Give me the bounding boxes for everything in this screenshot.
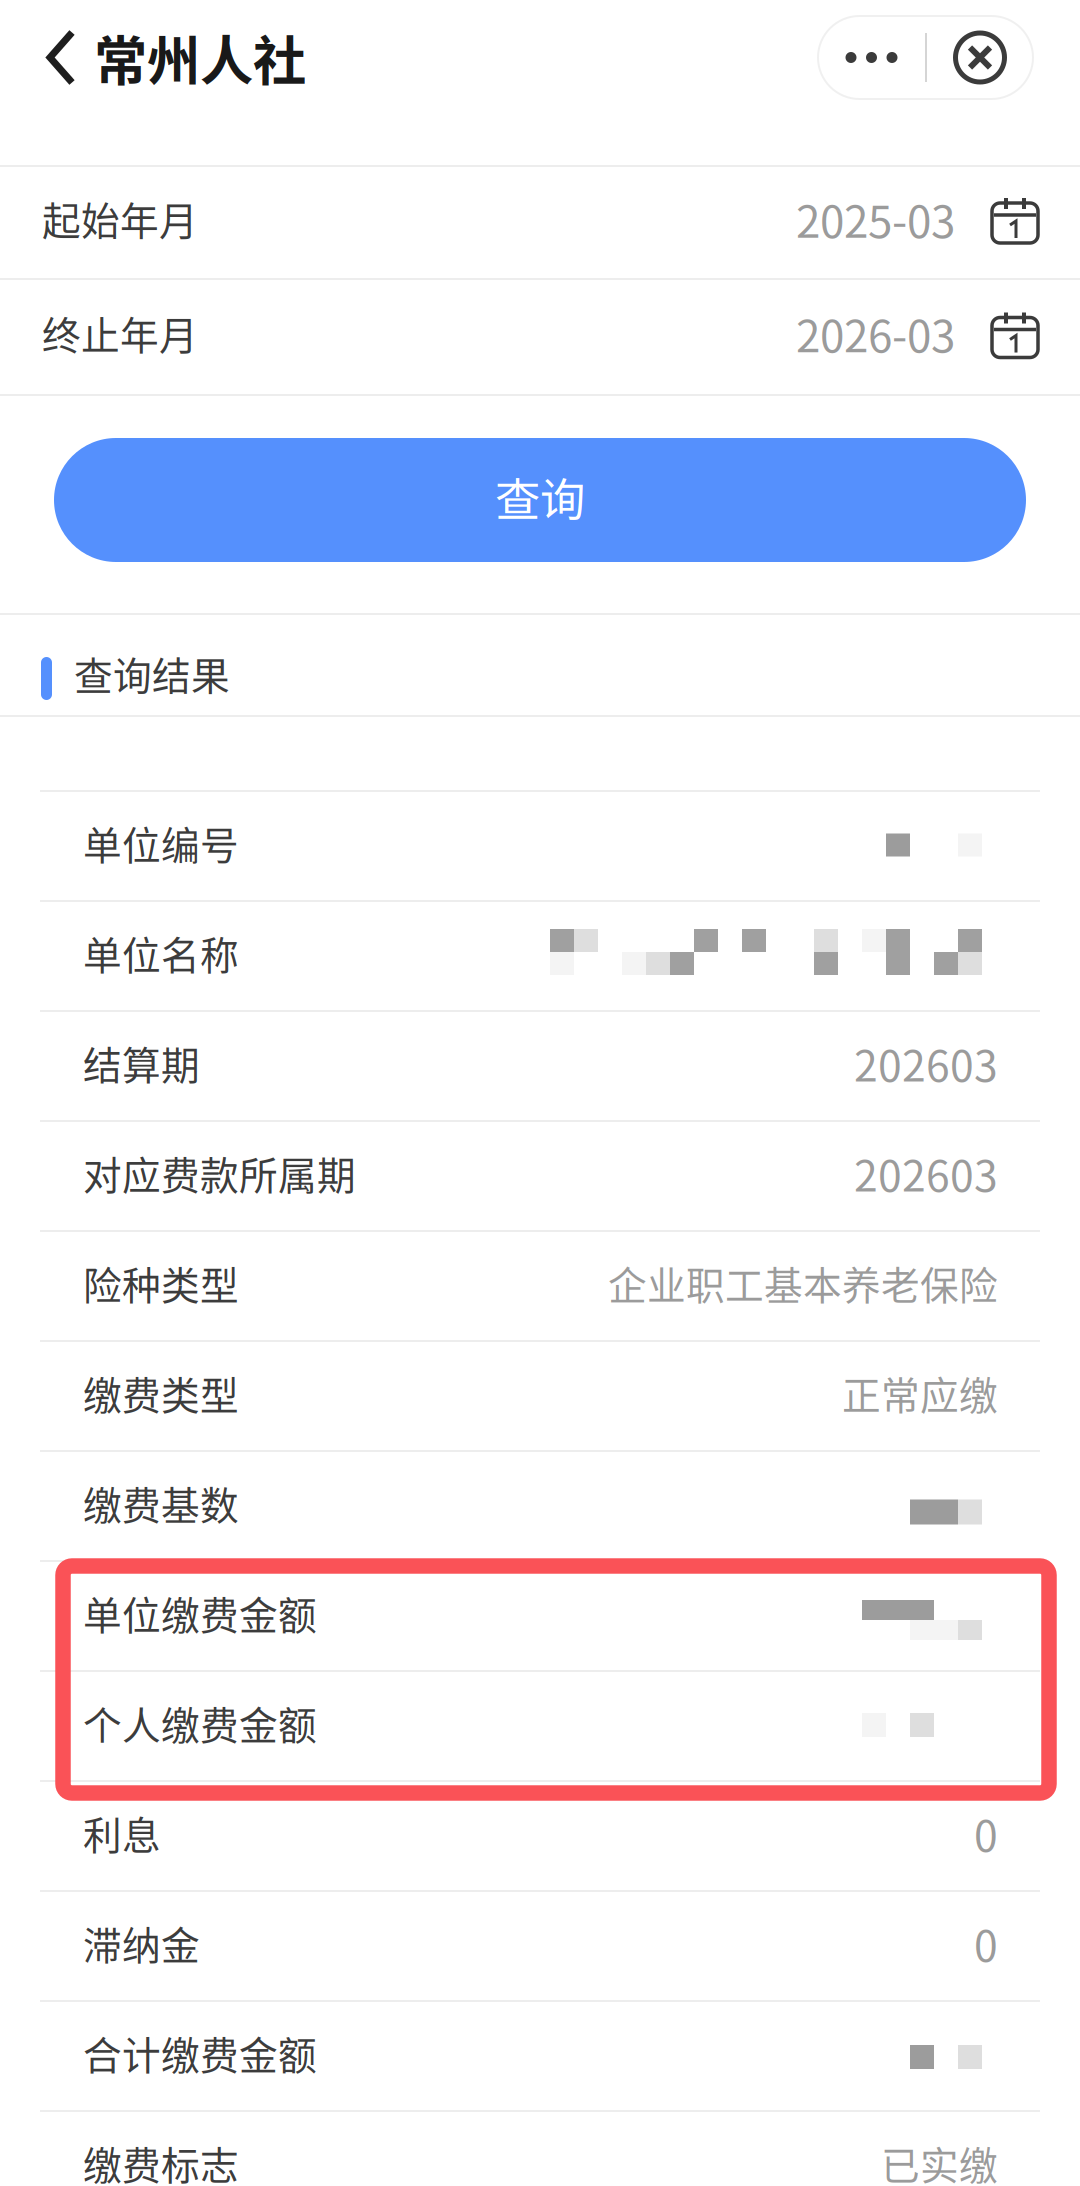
button[interactable]: 起始年月: [0, 167, 1080, 278]
staticText: 单位缴费金额: [83, 1585, 317, 1641]
staticText: 缴费类型: [83, 1365, 239, 1421]
staticText: 险种类型: [83, 1255, 239, 1311]
staticText: 利息: [83, 1805, 161, 1861]
staticText: 已实缴: [881, 2135, 998, 2186]
staticText: 正常应缴: [842, 1365, 998, 1421]
staticText: 起始年月: [42, 190, 198, 246]
staticText: 对应费款所属期: [83, 1145, 356, 1201]
button[interactable]: 终止年月: [0, 280, 1080, 394]
staticText: 0: [974, 1912, 998, 1974]
staticText: 查询结果: [74, 645, 230, 701]
button[interactable]: More: [818, 16, 925, 99]
button[interactable]: Close: [927, 16, 1033, 99]
staticText: 单位名称: [83, 925, 239, 981]
staticText: 202603: [854, 1142, 998, 1204]
staticText: 查询: [495, 464, 585, 530]
staticText: 合计缴费金额: [83, 2025, 317, 2081]
staticText: 终止年月: [42, 305, 198, 361]
staticText: 2025-03: [796, 187, 955, 250]
button[interactable]: 常州人社: [0, 0, 306, 115]
staticText: 2026-03: [796, 301, 955, 365]
staticText: 滞纳金: [83, 1915, 200, 1971]
staticText: 个人缴费金额: [83, 1695, 317, 1751]
staticText: 0: [974, 1802, 998, 1864]
staticText: 缴费基数: [83, 1475, 239, 1531]
staticText: 单位编号: [83, 815, 239, 871]
staticText: 缴费标志: [83, 2135, 239, 2186]
staticText: 企业职工基本养老保险: [608, 1255, 998, 1311]
staticText: 常州人社: [94, 19, 306, 96]
staticText: 结算期: [83, 1035, 200, 1091]
button[interactable]: 查询: [54, 438, 1026, 562]
staticText: 202603: [854, 1032, 998, 1094]
